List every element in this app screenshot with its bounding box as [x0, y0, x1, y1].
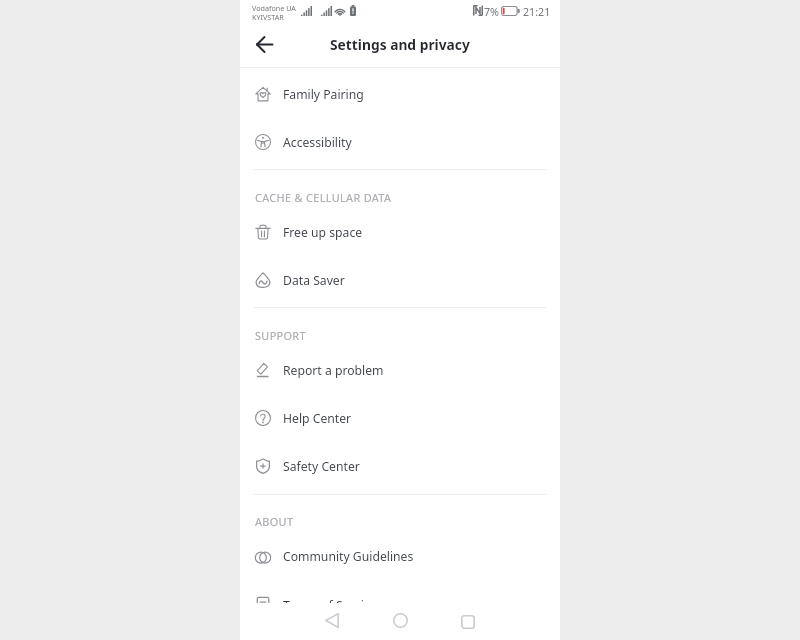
staticText: Free up space	[283, 224, 363, 241]
staticText: Help Center	[283, 410, 352, 427]
button[interactable]: Terms of Service	[240, 581, 560, 629]
button[interactable]: Back	[247, 27, 281, 61]
button[interactable]: Home	[380, 602, 420, 639]
button[interactable]: Report a problem	[240, 346, 560, 394]
button[interactable]: Safety Center	[240, 442, 560, 490]
button[interactable]: Help Center	[240, 394, 560, 442]
button[interactable]: Free up space	[240, 208, 560, 256]
button[interactable]: Data Saver	[240, 256, 560, 304]
staticText: Family Pairing	[283, 86, 364, 103]
staticText: Terms of Service	[283, 597, 377, 614]
button[interactable]: Recents	[448, 603, 488, 640]
button[interactable]: Community Guidelines	[240, 532, 560, 580]
staticText: CACHE & CELLULAR DATA	[255, 190, 392, 205]
staticText: ABOUT	[255, 514, 294, 529]
button[interactable]: Family Pairing	[240, 70, 560, 118]
staticText: Data Saver	[283, 272, 345, 289]
staticText: Accessibility	[283, 134, 352, 151]
staticText: Report a problem	[283, 362, 384, 379]
staticText: KYIVSTAR	[252, 12, 284, 22]
staticText: Safety Center	[283, 458, 360, 475]
staticText: Settings and privacy	[330, 35, 470, 54]
staticText: 7%	[484, 5, 499, 20]
button[interactable]: Back	[312, 602, 352, 639]
staticText: Community Guidelines	[283, 548, 414, 565]
staticText: SUPPORT	[255, 328, 306, 343]
staticText: 21:21	[523, 5, 551, 20]
staticText: Vodafone UA	[252, 3, 296, 13]
button[interactable]: Accessibility	[240, 118, 560, 166]
